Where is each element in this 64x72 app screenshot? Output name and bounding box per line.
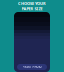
staticText: PAPER SIZE xyxy=(21,6,42,11)
button[interactable]: PRINT PHOTO xyxy=(17,64,47,70)
staticText: PRINT PHOTO xyxy=(22,65,41,69)
staticText: CHOOSE YOUR xyxy=(18,1,46,6)
